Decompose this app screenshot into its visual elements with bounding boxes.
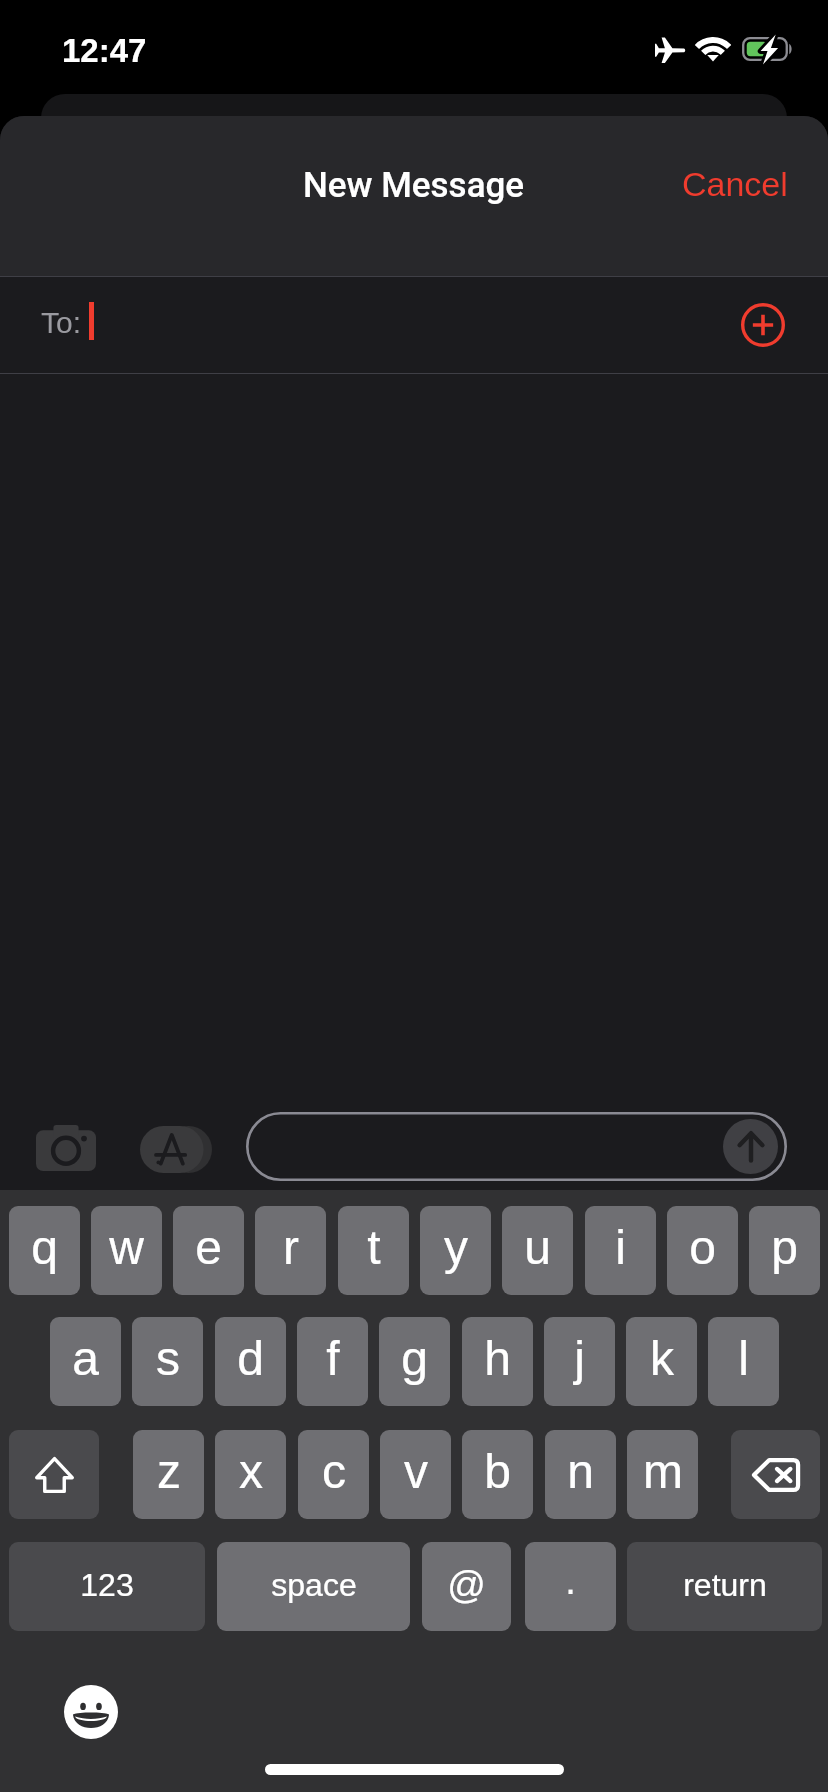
staticText: To:	[41, 306, 82, 340]
button[interactable]: c	[298, 1430, 369, 1519]
button[interactable]: Apps	[122, 1110, 230, 1188]
button[interactable]	[246, 1112, 787, 1181]
button[interactable]: e	[173, 1206, 244, 1295]
staticText: k	[650, 1332, 674, 1386]
staticText: b	[484, 1445, 511, 1499]
button[interactable]: w	[91, 1206, 162, 1295]
button[interactable]: t	[338, 1206, 409, 1295]
button[interactable]: Add contact	[727, 289, 799, 361]
button[interactable]: p	[749, 1206, 820, 1295]
staticText: f	[326, 1332, 340, 1386]
button[interactable]: @	[422, 1542, 511, 1631]
staticText: u	[524, 1221, 551, 1275]
staticText: v	[404, 1445, 428, 1499]
button[interactable]: r	[255, 1206, 326, 1295]
button[interactable]: Cancel	[642, 151, 828, 217]
button[interactable]: Emoji keyboard	[52, 1673, 130, 1751]
staticText: q	[31, 1221, 58, 1275]
staticText: return	[683, 1567, 767, 1603]
button[interactable]: Delete	[731, 1430, 820, 1519]
button[interactable]: a	[50, 1317, 121, 1406]
button[interactable]: k	[626, 1317, 697, 1406]
button[interactable]: space	[217, 1542, 410, 1631]
staticText: space	[271, 1567, 357, 1603]
button[interactable]: h	[462, 1317, 533, 1406]
staticText: New Message	[303, 165, 525, 206]
button[interactable]: d	[215, 1317, 286, 1406]
staticText: c	[322, 1445, 346, 1499]
button[interactable]: Camera	[29, 1111, 103, 1185]
button[interactable]: x	[215, 1430, 286, 1519]
staticText: l	[738, 1332, 749, 1386]
staticText: d	[237, 1332, 264, 1386]
staticText: n	[567, 1445, 594, 1499]
staticText: x	[239, 1445, 263, 1499]
button[interactable]: g	[379, 1317, 450, 1406]
staticText: i	[615, 1221, 626, 1275]
button[interactable]: Shift	[9, 1430, 99, 1519]
staticText: t	[367, 1221, 381, 1275]
button[interactable]: n	[545, 1430, 616, 1519]
staticText: o	[689, 1221, 716, 1275]
staticText: z	[157, 1445, 181, 1499]
staticText: m	[643, 1445, 683, 1499]
staticText: h	[484, 1332, 511, 1386]
button[interactable]: j	[544, 1317, 615, 1406]
button[interactable]: z	[133, 1430, 204, 1519]
staticText: w	[109, 1221, 144, 1275]
button[interactable]: f	[297, 1317, 368, 1406]
staticText: @	[447, 1564, 486, 1606]
staticText: Cancel	[682, 165, 788, 203]
staticText: y	[444, 1221, 468, 1275]
button[interactable]: m	[627, 1430, 698, 1519]
button[interactable]: l	[708, 1317, 779, 1406]
staticText: r	[283, 1221, 299, 1275]
button[interactable]: q	[9, 1206, 80, 1295]
button[interactable]: u	[502, 1206, 573, 1295]
button[interactable]: return	[627, 1542, 822, 1631]
button[interactable]: .	[525, 1542, 616, 1631]
staticText: g	[401, 1332, 428, 1386]
button[interactable]: o	[667, 1206, 738, 1295]
button[interactable]: v	[380, 1430, 451, 1519]
staticText: a	[72, 1332, 99, 1386]
staticText: j	[574, 1332, 585, 1386]
staticText: p	[771, 1221, 798, 1275]
staticText: 12:47	[62, 32, 147, 69]
button[interactable]: b	[462, 1430, 533, 1519]
button[interactable]: s	[132, 1317, 203, 1406]
button[interactable]: 123	[9, 1542, 205, 1631]
button[interactable]: y	[420, 1206, 491, 1295]
staticText: .	[565, 1560, 576, 1602]
staticText: 123	[80, 1567, 134, 1603]
button[interactable]: i	[585, 1206, 656, 1295]
staticText: e	[195, 1221, 222, 1275]
staticText: s	[156, 1332, 180, 1386]
